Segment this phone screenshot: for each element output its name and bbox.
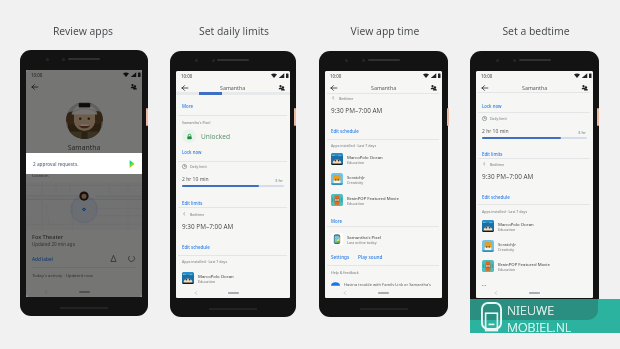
staticText: Fox Theater [32,233,64,240]
button[interactable]: Add label [32,256,53,262]
staticText: More [482,284,493,290]
button[interactable]: Add person [277,83,287,93]
staticText: 2 hr 10 min [182,176,209,183]
staticText: 3 hr [275,177,284,183]
staticText: MOBIEL.NL [507,319,572,336]
staticText: Set a bedtime [476,24,596,38]
staticText: Apps installed · Last 7 days [331,143,377,148]
staticText: ScratchJr [498,241,516,247]
staticText: Creativity [498,247,515,252]
staticText: 9:30 PM–7:00 AM [182,222,234,231]
staticText: Apps installed · Last 7 days [182,259,228,264]
staticText: Education [198,279,216,284]
button[interactable]: Add person [580,83,590,93]
staticText: Edit limits [182,200,203,206]
staticText: Bedtime [190,212,205,217]
button[interactable]: Directions [109,254,118,263]
staticText: More [182,103,193,109]
button[interactable]: MarcoPolo Ocean [325,152,442,166]
staticText: 10:00 [181,73,193,79]
staticText: BrainPOP Featured Movie [498,261,550,267]
button[interactable]: Edit schedule [476,191,593,202]
staticText: Set daily limits [174,24,294,38]
staticText: BrainPOP Featured Movie [347,195,399,201]
staticText: MarcoPolo Ocean [347,154,383,160]
button[interactable]: Settings [331,254,350,260]
button[interactable]: Back [329,83,339,93]
button[interactable]: Back [180,83,190,93]
button[interactable]: Samantha's Pixel [325,232,442,246]
staticText: 9:30 PM–7:00 AM [331,106,383,115]
staticText: 10:00 [481,73,493,79]
staticText: ScratchJr [347,174,365,180]
staticText: Help & feedback [331,270,359,275]
staticText: 10:00 [330,73,342,79]
staticText: Samantha [26,143,142,152]
staticText: 10:00 [31,72,43,78]
button[interactable]: Refresh [127,254,136,263]
staticText: Edit limits [482,151,503,157]
button[interactable]: Lock now [476,100,593,111]
button[interactable]: 2 approval requests. [26,153,142,174]
button[interactable]: Back [30,82,40,92]
button[interactable]: Edit schedule [176,241,290,252]
staticText: Updated 20 min ago [32,241,76,247]
staticText: Daily limit [490,116,507,121]
staticText: Education [347,201,365,206]
staticText: Creativity [347,180,364,185]
staticText: NIEUWE [507,302,555,319]
staticText: Lock now [182,149,202,155]
staticText: Bedtime [490,162,505,167]
staticText: Samantha's Pixel [182,120,211,125]
button[interactable]: Edit schedule [325,125,442,136]
button[interactable]: BrainPOP Featured Movie [325,193,442,207]
button[interactable]: Play sound [358,254,383,260]
button[interactable]: Edit limits [176,197,290,208]
staticText: Unlocked [201,132,231,141]
button[interactable]: Add person [429,83,439,93]
staticText: MarcoPolo Ocean [198,273,234,279]
staticText: Apps installed · Last 7 days [482,209,528,214]
button[interactable]: More [176,100,290,111]
staticText: Bedtime [339,96,354,101]
staticText: Edit schedule [482,194,510,200]
button[interactable]: More [325,215,442,226]
staticText: Samantha [371,84,397,91]
staticText: Daily limit [190,164,207,169]
staticText: Edit schedule [182,244,210,250]
button[interactable]: Back [480,83,490,93]
staticText: Settings [331,254,350,260]
staticText: Play sound [358,254,383,260]
staticText: Location [32,173,49,179]
staticText: Education [498,267,516,272]
staticText: Today's activity · Updated now [32,272,93,278]
staticText: Edit schedule [331,128,359,134]
staticText: 9:30 PM–7:00 AM [482,172,534,181]
button[interactable]: Edit limits [476,148,593,159]
staticText: Education [347,160,365,165]
staticText: Samantha [220,84,246,91]
staticText: More [331,218,342,224]
button[interactable]: Lock now [176,146,290,157]
staticText: Samantha's Pixel [347,234,382,240]
button[interactable]: Add person [129,82,139,92]
staticText: 2 approval requests. [33,161,79,167]
button[interactable]: More [476,281,593,292]
button[interactable]: ScratchJr [476,239,593,253]
button[interactable]: BrainPOP Featured Movie [476,259,593,273]
staticText: 3 hr [578,129,587,135]
button[interactable]: Unlocked [176,129,290,143]
staticText: Education [498,227,516,232]
button[interactable]: MarcoPolo Ocean [476,219,593,233]
staticText: MarcoPolo Ocean [498,221,534,227]
staticText: 2 hr 10 min [482,128,509,135]
staticText: Last online today [347,240,377,245]
button[interactable]: MarcoPolo Ocean [176,271,290,285]
staticText: Lock now [482,103,502,109]
staticText: Having trouble with Family Link or Saman… [344,282,431,287]
button[interactable]: ScratchJr [325,172,442,186]
staticText: View app time [325,24,445,38]
staticText: Samantha [522,84,548,91]
staticText: Review apps [23,24,143,38]
